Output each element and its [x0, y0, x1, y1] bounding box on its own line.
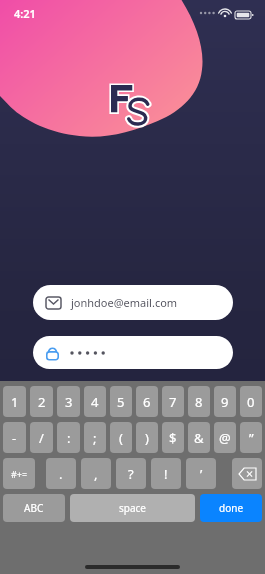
staticText: @: [219, 429, 231, 447]
button[interactable]: ABC: [3, 494, 65, 522]
button[interactable]: 4: [84, 386, 106, 417]
button[interactable]: 8: [188, 386, 210, 417]
staticText: 2: [38, 393, 46, 411]
button[interactable]: 0: [240, 386, 262, 417]
button[interactable]: 1: [3, 386, 26, 417]
staticText: &: [194, 429, 204, 447]
staticText: 0: [247, 393, 255, 411]
staticText: done: [219, 501, 244, 515]
button[interactable]: @: [214, 422, 236, 453]
staticText: 4: [91, 393, 99, 411]
staticText: ”: [249, 429, 254, 447]
button[interactable]: 9: [214, 386, 236, 417]
button[interactable]: done: [200, 494, 262, 522]
button[interactable]: Backspace: [232, 458, 262, 489]
staticText: .: [59, 465, 63, 483]
button[interactable]: !: [151, 458, 181, 489]
button[interactable]: $: [162, 422, 184, 453]
button[interactable]: (: [110, 422, 132, 453]
staticText: ’: [200, 465, 203, 483]
staticText: space: [119, 501, 146, 515]
staticText: !: [164, 465, 168, 483]
button[interactable]: .: [46, 458, 76, 489]
button[interactable]: ,: [81, 458, 111, 489]
staticText: 9: [221, 393, 229, 411]
button[interactable]: ?: [116, 458, 146, 489]
staticText: jonhdoe@email.com: [71, 295, 178, 310]
button[interactable]: 7: [162, 386, 184, 417]
button[interactable]: ): [136, 422, 158, 453]
button[interactable]: ”: [240, 422, 262, 453]
button[interactable]: ’: [186, 458, 216, 489]
staticText: 7: [169, 393, 177, 411]
staticText: /: [39, 429, 44, 447]
button[interactable]: &: [188, 422, 210, 453]
staticText: 6: [143, 393, 151, 411]
staticText: ?: [128, 465, 134, 483]
staticText: ): [145, 429, 149, 447]
button[interactable]: [33, 336, 233, 369]
button[interactable]: 6: [136, 386, 158, 417]
button[interactable]: -: [3, 422, 26, 453]
button[interactable]: jonhdoe@email.com: [33, 285, 233, 320]
button[interactable]: :: [57, 422, 80, 453]
staticText: -: [12, 429, 17, 447]
staticText: 3: [65, 393, 73, 411]
button[interactable]: 5: [110, 386, 132, 417]
staticText: 8: [195, 393, 203, 411]
button[interactable]: #+=: [3, 458, 35, 489]
staticText: ;: [93, 429, 97, 447]
staticText: 5: [117, 393, 125, 411]
staticText: $: [169, 429, 177, 447]
button[interactable]: 2: [30, 386, 53, 417]
staticText: :: [67, 429, 71, 447]
button[interactable]: ;: [84, 422, 106, 453]
staticText: #+=: [11, 468, 28, 480]
staticText: ABC: [24, 501, 44, 515]
staticText: ,: [94, 465, 98, 483]
staticText: (: [119, 429, 123, 447]
button[interactable]: space: [70, 494, 195, 522]
staticText: 1: [11, 393, 19, 411]
staticText: 4:21: [14, 6, 36, 21]
button[interactable]: 3: [57, 386, 80, 417]
button[interactable]: /: [30, 422, 53, 453]
